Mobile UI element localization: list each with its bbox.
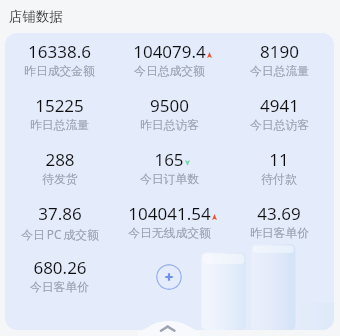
button[interactable]: 收起 <box>138 321 200 336</box>
staticText: 昨日总流量 <box>30 118 89 133</box>
button[interactable]: 11 <box>224 148 334 202</box>
button[interactable]: 4941 <box>224 94 334 148</box>
button[interactable]: 104079.4 <box>114 40 224 94</box>
staticText: 16338.6 <box>28 40 91 63</box>
staticText: 37.86 <box>38 202 82 225</box>
button[interactable]: 15225 <box>5 94 114 148</box>
staticText: 9500 <box>150 94 189 117</box>
button[interactable]: 8190 <box>224 40 334 94</box>
button[interactable]: 288 <box>5 148 114 202</box>
button[interactable]: 165 <box>114 148 224 202</box>
staticText: 待发货 <box>42 172 78 187</box>
staticText: 昨日成交金额 <box>24 64 95 79</box>
staticText: 11 <box>269 148 289 171</box>
staticText: 今日无线成交额 <box>128 226 211 241</box>
staticText: 104079.4 <box>133 40 206 63</box>
staticText: 4941 <box>260 94 299 117</box>
staticText: 680.26 <box>33 256 87 279</box>
button[interactable]: 37.86 <box>5 202 114 256</box>
staticText: 昨日客单价 <box>250 226 309 241</box>
button[interactable]: 680.26 <box>5 256 114 310</box>
button[interactable]: 9500 <box>114 94 224 148</box>
staticText: 104041.54 <box>128 202 211 225</box>
button[interactable]: 104041.54 <box>114 202 224 256</box>
staticText: 43.69 <box>257 202 301 225</box>
staticText: 165 <box>154 148 184 171</box>
staticText: 今日总成交额 <box>134 64 205 79</box>
staticText: 15225 <box>35 94 84 117</box>
staticText: 288 <box>45 148 75 171</box>
staticText: 今日总访客 <box>250 118 309 133</box>
staticText: 今日总流量 <box>250 64 309 79</box>
staticText: 8190 <box>260 40 299 63</box>
staticText: 昨日总访客 <box>140 118 199 133</box>
button[interactable]: 43.69 <box>224 202 334 256</box>
button[interactable]: 添加指标 <box>156 264 182 290</box>
staticText: 店铺数据 <box>9 8 63 25</box>
staticText: 今日 PC 成交额 <box>21 226 99 242</box>
button[interactable]: 16338.6 <box>5 40 114 94</box>
staticText: 今日客单价 <box>30 280 89 295</box>
staticText: 待付款 <box>261 172 297 187</box>
staticText: 今日订单数 <box>140 172 199 187</box>
